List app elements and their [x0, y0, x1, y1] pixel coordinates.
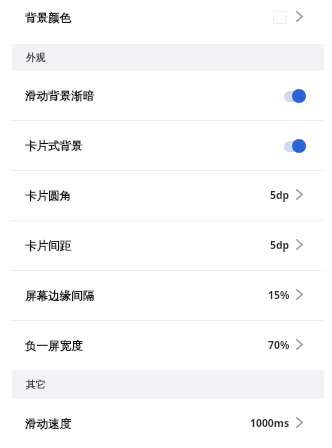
staticText: 背景颜色 [25, 11, 71, 25]
staticText: 负一屏宽度 [25, 339, 83, 353]
button[interactable]: 卡片间距 [0, 221, 332, 270]
staticText: 5dp [270, 238, 290, 252]
button[interactable]: 屏幕边缘间隔 [0, 271, 332, 320]
staticText: 其它 [26, 379, 46, 391]
button[interactable]: 滑动速度 [0, 399, 332, 448]
staticText: 卡片圆角 [25, 189, 71, 203]
staticText: 卡片间距 [25, 239, 71, 253]
button[interactable]: 卡片式背景 [0, 121, 332, 170]
staticText: 滑动速度 [25, 417, 71, 431]
staticText: 外观 [26, 52, 46, 64]
button[interactable]: 滑动背景渐暗 [0, 71, 332, 120]
staticText: 滑动背景渐暗 [25, 89, 94, 103]
button[interactable]: 背景颜色 [0, 0, 332, 44]
button[interactable]: 负一屏宽度 [0, 321, 332, 370]
staticText: 15% [268, 288, 290, 302]
staticText: 卡片式背景 [25, 139, 83, 153]
button[interactable]: 卡片圆角 [0, 171, 332, 220]
other: Current background colour [273, 11, 286, 24]
staticText: 5dp [270, 188, 290, 202]
staticText: 1000ms [250, 416, 290, 430]
staticText: 屏幕边缘间隔 [25, 289, 94, 303]
staticText: 70% [268, 338, 290, 352]
